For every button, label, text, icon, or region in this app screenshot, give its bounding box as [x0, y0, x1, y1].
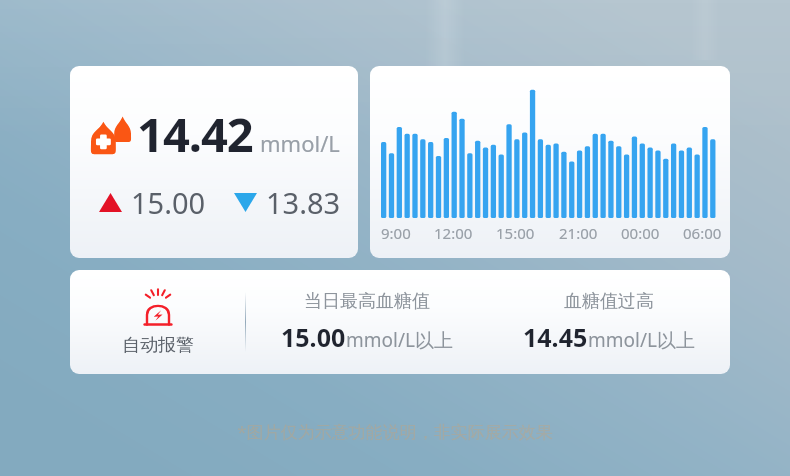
staticText: mmol/L以上 [588, 327, 695, 353]
staticText: mmol/L以上 [346, 327, 453, 353]
staticText: 15.00 [281, 320, 346, 354]
staticText: 14.42 [137, 102, 253, 166]
staticText: 06:00 [683, 223, 722, 243]
button[interactable]: 14.42 [70, 66, 358, 258]
staticText: 自动报警 [122, 334, 194, 357]
staticText: 21:00 [559, 223, 598, 243]
button[interactable]: 自动报警 [70, 270, 245, 374]
staticText: 9:00 [381, 223, 411, 243]
button[interactable]: 当日最高血糖值 [246, 270, 488, 374]
staticText: mmol/L [260, 128, 340, 158]
button[interactable]: 9:00 [370, 66, 730, 258]
staticText: 15.00 [131, 183, 206, 222]
button[interactable]: 血糖值过高 [488, 270, 730, 374]
staticText: 血糖值过高 [564, 290, 654, 313]
staticText: *图片仅为示意功能说明，非实际展示效果 [0, 420, 790, 443]
staticText: 当日最高血糖值 [304, 290, 430, 313]
staticText: 12:00 [434, 223, 473, 243]
staticText: 13.83 [266, 183, 341, 222]
staticText: 15:00 [496, 223, 535, 243]
staticText: 14.45 [523, 320, 588, 354]
staticText: 00:00 [621, 223, 660, 243]
